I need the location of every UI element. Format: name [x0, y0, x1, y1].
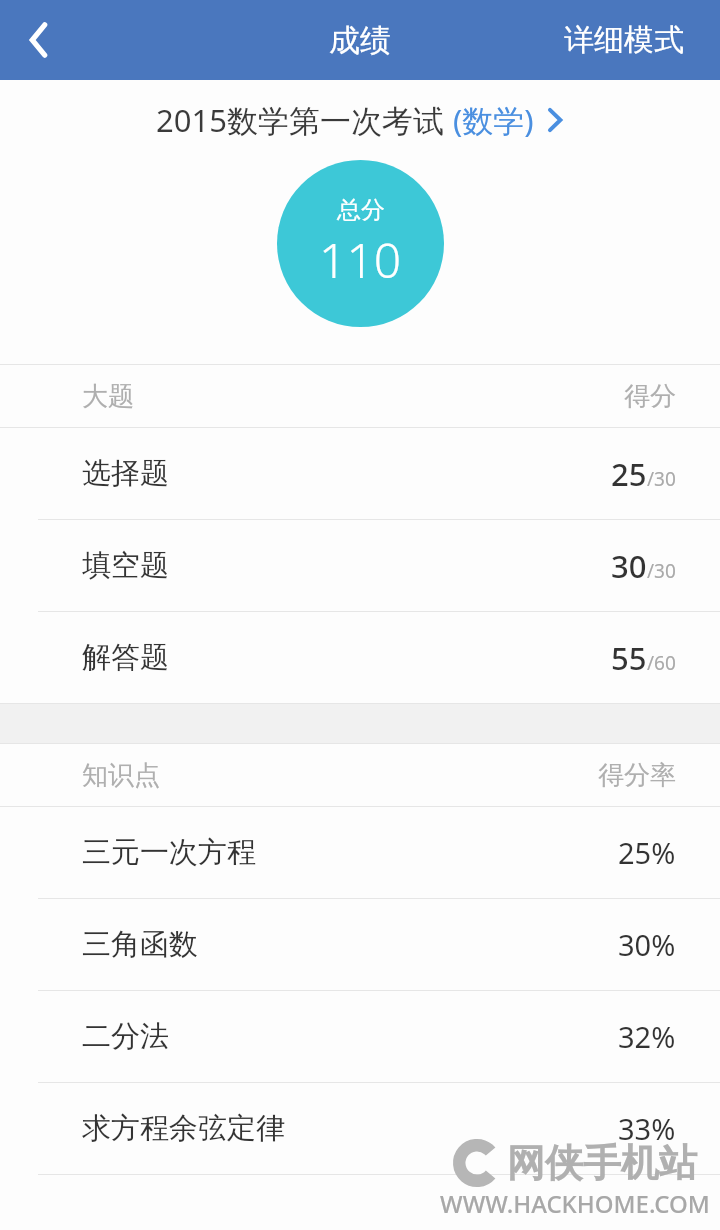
staticText: 2015数学第一次考试 — [156, 99, 444, 141]
staticText: (数学) — [453, 99, 534, 141]
button[interactable]: Back — [0, 0, 78, 80]
staticText: 网侠手机站 — [507, 1139, 697, 1187]
button[interactable]: 详细模式 — [528, 0, 720, 80]
staticText: WWW.HACKHOME.COM — [440, 1187, 710, 1220]
staticText: 解答题 — [82, 639, 169, 676]
staticText: 30% — [618, 925, 676, 964]
staticText: 30 — [611, 545, 647, 587]
staticText: 填空题 — [82, 547, 169, 584]
button[interactable]: 解答题 — [0, 612, 720, 703]
staticText: 得分 — [624, 380, 676, 413]
staticText: 25 — [611, 453, 647, 495]
staticText: 详细模式 — [564, 21, 684, 59]
button[interactable]: 2015数学第一次考试 — [0, 80, 720, 160]
staticText: 110 — [319, 227, 402, 292]
staticText: 选择题 — [82, 455, 169, 492]
button[interactable]: 填空题 — [0, 520, 720, 611]
button[interactable]: 求方程余弦定律 — [0, 1083, 720, 1174]
staticText: 二分法 — [82, 1018, 169, 1055]
staticText: 得分率 — [598, 759, 676, 792]
staticText: 知识点 — [82, 759, 160, 792]
button[interactable]: 二分法 — [0, 991, 720, 1082]
staticText: 总分 — [337, 195, 385, 225]
button[interactable]: 选择题 — [0, 428, 720, 519]
staticText: /60 — [647, 650, 676, 676]
staticText: 求方程余弦定律 — [82, 1110, 285, 1147]
staticText: 32% — [618, 1017, 676, 1056]
staticText: 成绩 — [329, 21, 391, 60]
staticText: 55 — [611, 637, 647, 679]
staticText: /30 — [647, 558, 676, 584]
staticText: 三角函数 — [82, 926, 198, 963]
staticText: 25% — [618, 833, 676, 872]
button[interactable]: 三元一次方程 — [0, 807, 720, 898]
staticText: 33% — [618, 1109, 676, 1148]
staticText: 三元一次方程 — [82, 834, 256, 871]
button[interactable]: 总分 — [277, 160, 444, 327]
staticText: 大题 — [82, 380, 134, 413]
staticText: /30 — [647, 466, 676, 492]
button[interactable]: 三角函数 — [0, 899, 720, 990]
